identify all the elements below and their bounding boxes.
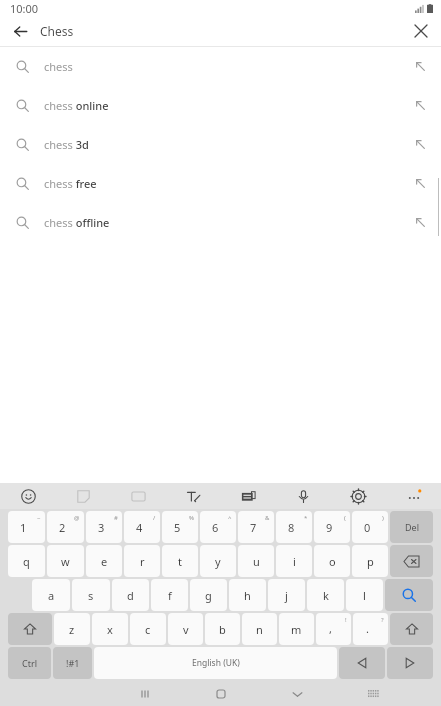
button[interactable]: Keyboard layout (221, 483, 276, 509)
staticText: chess 3d (44, 137, 89, 152)
button[interactable]: i (276, 545, 312, 577)
button[interactable]: Insert suggestion (399, 164, 441, 203)
button[interactable]: n (242, 613, 277, 645)
button[interactable]: Ctrl (8, 647, 51, 679)
button[interactable]: q (8, 545, 45, 577)
button[interactable]: h (229, 579, 266, 611)
button[interactable]: 2 (47, 511, 84, 543)
button[interactable]: English (UK) (94, 647, 337, 679)
staticText: 1 (20, 520, 27, 535)
staticText: j (285, 588, 288, 603)
button[interactable]: chess 3d (0, 125, 441, 164)
button[interactable]: Home (183, 682, 259, 706)
button[interactable]: x (92, 613, 128, 645)
button[interactable]: Insert suggestion (399, 203, 441, 242)
button[interactable]: a (32, 579, 70, 611)
staticText: 5 (174, 520, 181, 535)
button[interactable]: chess online (0, 86, 441, 125)
staticText: l (363, 588, 366, 603)
button[interactable]: 6 (200, 511, 236, 543)
staticText: 3 (98, 520, 105, 535)
button[interactable]: p (352, 545, 388, 577)
button[interactable]: , (316, 613, 351, 645)
button[interactable]: chess free (0, 164, 441, 203)
button[interactable]: Del (390, 511, 433, 543)
staticText: u (253, 554, 260, 569)
button[interactable]: g (190, 579, 227, 611)
staticText: * (304, 514, 308, 522)
button[interactable]: f (151, 579, 188, 611)
staticText: v (183, 622, 189, 637)
staticText: 2 (59, 520, 66, 535)
staticText: chess online (44, 98, 109, 113)
staticText: / (153, 514, 156, 522)
button[interactable]: Shift (8, 613, 52, 645)
staticText: m (291, 622, 302, 637)
button[interactable]: Shift (390, 613, 433, 645)
button[interactable]: 8 (276, 511, 312, 543)
staticText: , (329, 621, 332, 636)
button[interactable]: Stickers (56, 483, 111, 509)
button[interactable]: 3 (86, 511, 122, 543)
button[interactable]: GIF (111, 483, 166, 509)
staticText: English (UK) (192, 657, 240, 669)
staticText: # (114, 514, 118, 522)
button[interactable]: Text edit (166, 483, 221, 509)
button[interactable]: s (72, 579, 110, 611)
staticText: p (367, 554, 374, 569)
button[interactable]: Keyboard switcher (335, 682, 411, 706)
button[interactable]: Clear (401, 16, 441, 46)
button[interactable]: d (112, 579, 149, 611)
button[interactable]: Back (0, 16, 40, 46)
button[interactable]: l (346, 579, 383, 611)
button[interactable]: Insert suggestion (399, 86, 441, 125)
button[interactable]: v (168, 613, 203, 645)
button[interactable]: y (200, 545, 236, 577)
button[interactable]: chess (0, 47, 441, 86)
button[interactable]: Move cursor left (339, 647, 385, 679)
button[interactable]: z (54, 613, 90, 645)
button[interactable]: t (162, 545, 198, 577)
button[interactable]: Voice input (276, 483, 331, 509)
button[interactable]: r (124, 545, 160, 577)
button[interactable]: o (314, 545, 350, 577)
button[interactable]: Insert suggestion (399, 47, 441, 86)
button[interactable]: e (86, 545, 122, 577)
staticText: ~ (37, 514, 41, 522)
button[interactable]: Backspace (390, 545, 433, 577)
staticText: 7 (250, 520, 257, 535)
button[interactable]: w (47, 545, 84, 577)
staticText: 10:00 (10, 1, 39, 16)
staticText: d (127, 588, 134, 603)
button[interactable]: !#1 (53, 647, 92, 679)
button[interactable]: Hide keyboard (259, 682, 335, 706)
button[interactable]: b (205, 613, 240, 645)
staticText: . (366, 621, 369, 636)
staticText: t (178, 554, 182, 569)
button[interactable]: 4 (124, 511, 160, 543)
button[interactable]: k (307, 579, 344, 611)
button[interactable]: More options (386, 483, 441, 509)
button[interactable]: 9 (314, 511, 350, 543)
button[interactable]: Search (385, 579, 433, 611)
button[interactable]: 1 (8, 511, 45, 543)
button[interactable]: Emoji (0, 483, 56, 509)
staticText: chess free (44, 176, 97, 191)
staticText: 6 (212, 520, 219, 535)
button[interactable]: chess offline (0, 203, 441, 242)
button[interactable]: 7 (238, 511, 274, 543)
button[interactable]: . (353, 613, 388, 645)
button[interactable]: j (268, 579, 305, 611)
staticText: h (244, 588, 251, 603)
button[interactable]: m (279, 613, 314, 645)
button[interactable]: u (238, 545, 274, 577)
button[interactable]: 5 (162, 511, 198, 543)
button[interactable]: Move cursor right (387, 647, 433, 679)
button[interactable]: Settings (331, 483, 386, 509)
button[interactable]: 0 (352, 511, 388, 543)
staticText: n (256, 622, 263, 637)
staticText: r (140, 554, 145, 569)
button[interactable]: Recent apps (107, 682, 183, 706)
button[interactable]: Insert suggestion (399, 125, 441, 164)
button[interactable]: c (130, 613, 166, 645)
